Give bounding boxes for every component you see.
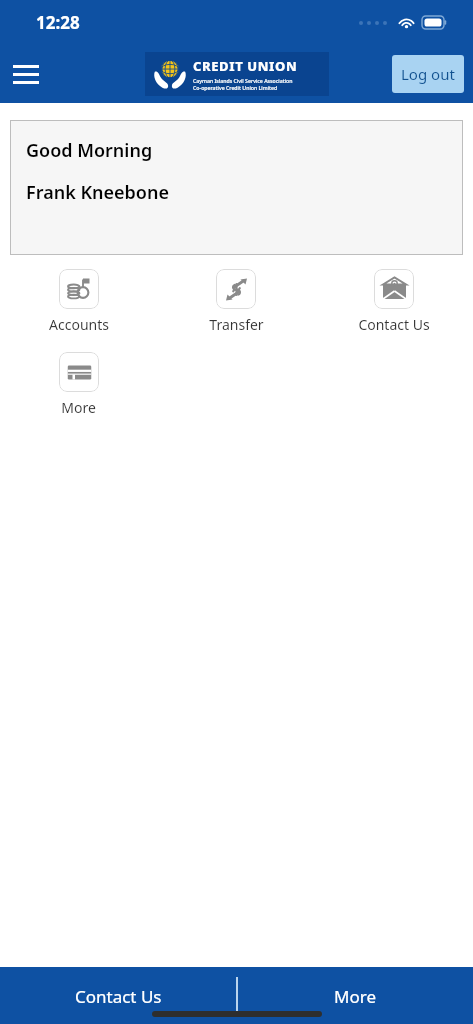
staticText: Transfer bbox=[209, 315, 264, 334]
staticText: CREDIT UNION bbox=[193, 57, 298, 75]
staticText: Contact Us bbox=[75, 985, 162, 1008]
staticText: Co-operative Credit Union Limited bbox=[193, 84, 278, 91]
button[interactable]: Accounts bbox=[0, 267, 157, 336]
staticText: Frank Kneebone bbox=[26, 180, 169, 205]
button[interactable]: Good Morning bbox=[10, 120, 463, 255]
button[interactable]: Contact Us bbox=[315, 267, 473, 336]
button[interactable]: Log out bbox=[392, 55, 464, 93]
button[interactable]: Open navigation menu bbox=[0, 48, 52, 100]
staticText: Cayman Islands Civil Service Association bbox=[193, 77, 293, 84]
button[interactable]: Credit Union logo bbox=[145, 52, 329, 96]
button[interactable]: More bbox=[0, 350, 157, 419]
staticText: More bbox=[334, 985, 376, 1008]
staticText: 12:28 bbox=[36, 11, 80, 34]
staticText: Good Morning bbox=[26, 138, 153, 163]
staticText: Contact Us bbox=[358, 315, 430, 334]
button[interactable]: Contact Us bbox=[0, 967, 236, 1024]
staticText: Log out bbox=[401, 64, 455, 84]
staticText: Accounts bbox=[49, 315, 109, 334]
button[interactable]: Transfer bbox=[157, 267, 315, 336]
staticText: More bbox=[61, 398, 96, 417]
button[interactable]: More bbox=[236, 967, 473, 1024]
